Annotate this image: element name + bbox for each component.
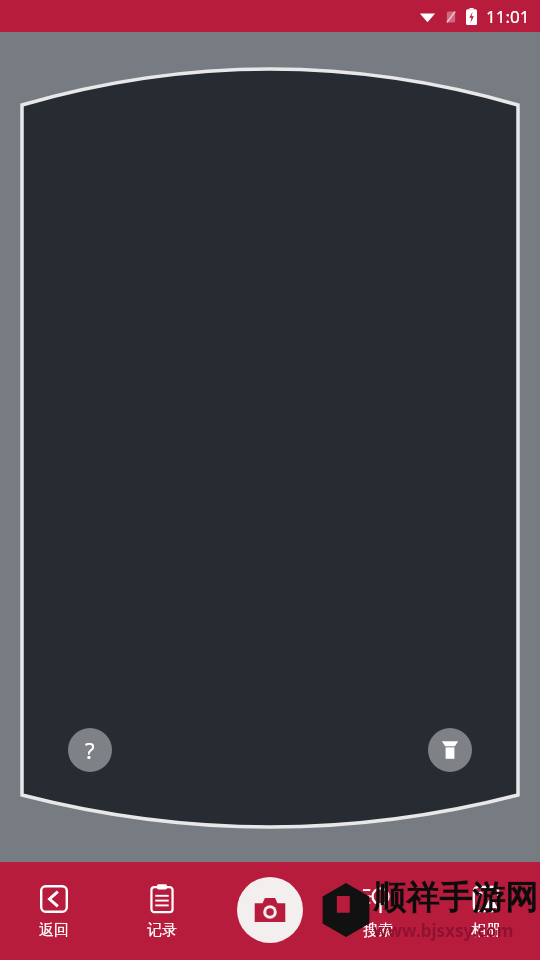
- staticText: ?: [85, 735, 95, 765]
- staticText: 记录: [147, 921, 177, 940]
- button[interactable]: 返回: [0, 862, 108, 960]
- staticText: 顺祥手游网: [373, 877, 538, 919]
- staticText: 返回: [39, 921, 69, 940]
- staticText: 相册: [471, 921, 501, 940]
- button[interactable]: Help: [68, 728, 112, 772]
- button[interactable]: Flashlight: [428, 728, 472, 772]
- button[interactable]: 记录: [108, 862, 216, 960]
- button[interactable]: Shutter: [237, 877, 303, 943]
- button[interactable]: 搜索: [324, 862, 432, 960]
- button[interactable]: 相册: [432, 862, 540, 960]
- staticText: 11:01: [486, 5, 530, 28]
- staticText: 搜索: [363, 921, 393, 940]
- staticText: www.bjsxsy.com: [373, 919, 514, 942]
